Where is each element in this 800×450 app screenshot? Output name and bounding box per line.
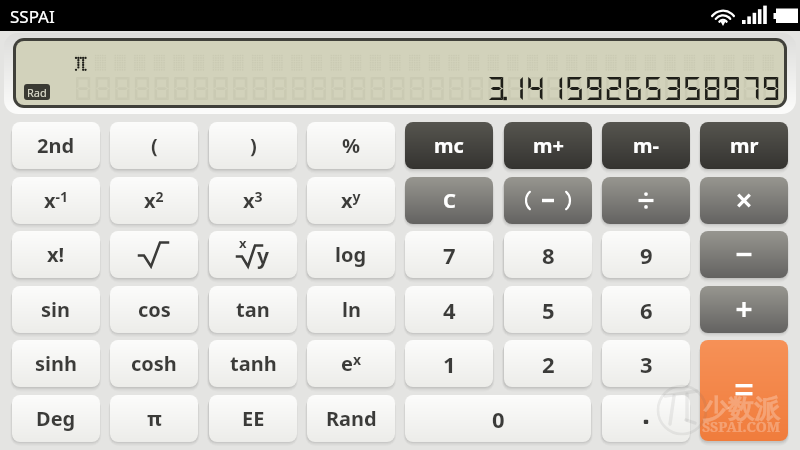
staticText: x2: [144, 187, 164, 214]
staticText: mc: [434, 132, 464, 159]
staticText: cosh: [131, 350, 177, 377]
staticText: ): [250, 132, 257, 159]
staticText: ex: [341, 350, 362, 377]
button[interactable]: 0: [405, 395, 591, 442]
button[interactable]: Divide: [602, 177, 690, 224]
button[interactable]: EE: [209, 395, 297, 442]
staticText: y: [257, 242, 269, 271]
button[interactable]: 5: [504, 286, 592, 333]
button[interactable]: (: [110, 122, 198, 169]
button[interactable]: 7: [405, 231, 493, 278]
staticText: π: [147, 405, 162, 432]
button[interactable]: C: [405, 177, 493, 224]
button[interactable]: ex: [307, 340, 395, 387]
staticText: sinh: [35, 350, 78, 377]
staticText: sin: [41, 296, 71, 323]
staticText: x: [239, 234, 247, 252]
button[interactable]: ln: [307, 286, 395, 333]
button[interactable]: %: [307, 122, 395, 169]
staticText: 1: [443, 349, 456, 379]
staticText: EE: [242, 405, 265, 432]
staticText: Rand: [326, 405, 377, 432]
button[interactable]: Decimal point: [602, 395, 690, 442]
button[interactable]: 2nd: [12, 122, 100, 169]
staticText: 0: [492, 404, 505, 434]
staticText: (: [151, 132, 158, 159]
staticText: 8: [542, 240, 555, 270]
button[interactable]: π: [110, 395, 198, 442]
button[interactable]: x!: [12, 231, 100, 278]
staticText: m-: [633, 132, 659, 159]
button[interactable]: Multiply: [700, 177, 788, 224]
button[interactable]: sin: [12, 286, 100, 333]
staticText: SSPAI.COM: [702, 417, 781, 436]
button[interactable]: mc: [405, 122, 493, 169]
staticText: 5: [542, 295, 555, 325]
button[interactable]: 1: [405, 340, 493, 387]
button[interactable]: Rand: [307, 395, 395, 442]
button[interactable]: 8: [504, 231, 592, 278]
button[interactable]: xy: [307, 177, 395, 224]
button[interactable]: x3: [209, 177, 297, 224]
button[interactable]: x-1: [12, 177, 100, 224]
button[interactable]: 4: [405, 286, 493, 333]
other: Status icons: [700, 0, 800, 31]
button[interactable]: Negate: [504, 177, 592, 224]
staticText: 2: [542, 349, 555, 379]
button[interactable]: tanh: [209, 340, 297, 387]
staticText: 9: [640, 240, 653, 270]
staticText: 3: [640, 349, 653, 379]
staticText: tanh: [230, 350, 277, 377]
staticText: ln: [342, 296, 361, 323]
button[interactable]: mr: [700, 122, 788, 169]
staticText: Deg: [36, 405, 76, 432]
staticText: log: [335, 241, 367, 268]
staticText: xy: [341, 187, 361, 214]
staticText: 4: [443, 295, 456, 325]
staticText: x!: [47, 241, 65, 268]
staticText: %: [342, 132, 361, 159]
staticText: mr: [730, 132, 759, 159]
staticText: 6: [640, 295, 653, 325]
button[interactable]: Deg: [12, 395, 100, 442]
button[interactable]: m+: [504, 122, 592, 169]
button[interactable]: 9: [602, 231, 690, 278]
button[interactable]: x2: [110, 177, 198, 224]
staticText: x3: [243, 187, 263, 214]
button[interactable]: Plus: [700, 286, 788, 333]
staticText: x-1: [44, 187, 69, 214]
staticText: m+: [533, 132, 564, 159]
button[interactable]: ): [209, 122, 297, 169]
button[interactable]: log: [307, 231, 395, 278]
staticText: 少数派: [702, 393, 780, 426]
button[interactable]: cosh: [110, 340, 198, 387]
button[interactable]: 3: [602, 340, 690, 387]
button[interactable]: Minus: [700, 231, 788, 278]
button[interactable]: Square root: [110, 231, 198, 278]
button[interactable]: cos: [110, 286, 198, 333]
button[interactable]: m-: [602, 122, 690, 169]
staticText: tan: [236, 296, 270, 323]
button[interactable]: 6: [602, 286, 690, 333]
button[interactable]: sinh: [12, 340, 100, 387]
staticText: SSPAI: [10, 5, 55, 28]
staticText: cos: [138, 296, 171, 323]
staticText: 2nd: [37, 132, 75, 159]
button[interactable]: 2: [504, 340, 592, 387]
staticText: Rad: [27, 85, 47, 100]
button[interactable]: X-th root of y: [209, 231, 297, 278]
button[interactable]: tan: [209, 286, 297, 333]
button[interactable]: Rad: [24, 84, 50, 100]
staticText: 7: [443, 240, 456, 270]
button[interactable]: Equals: [700, 340, 788, 441]
staticText: C: [443, 187, 456, 214]
